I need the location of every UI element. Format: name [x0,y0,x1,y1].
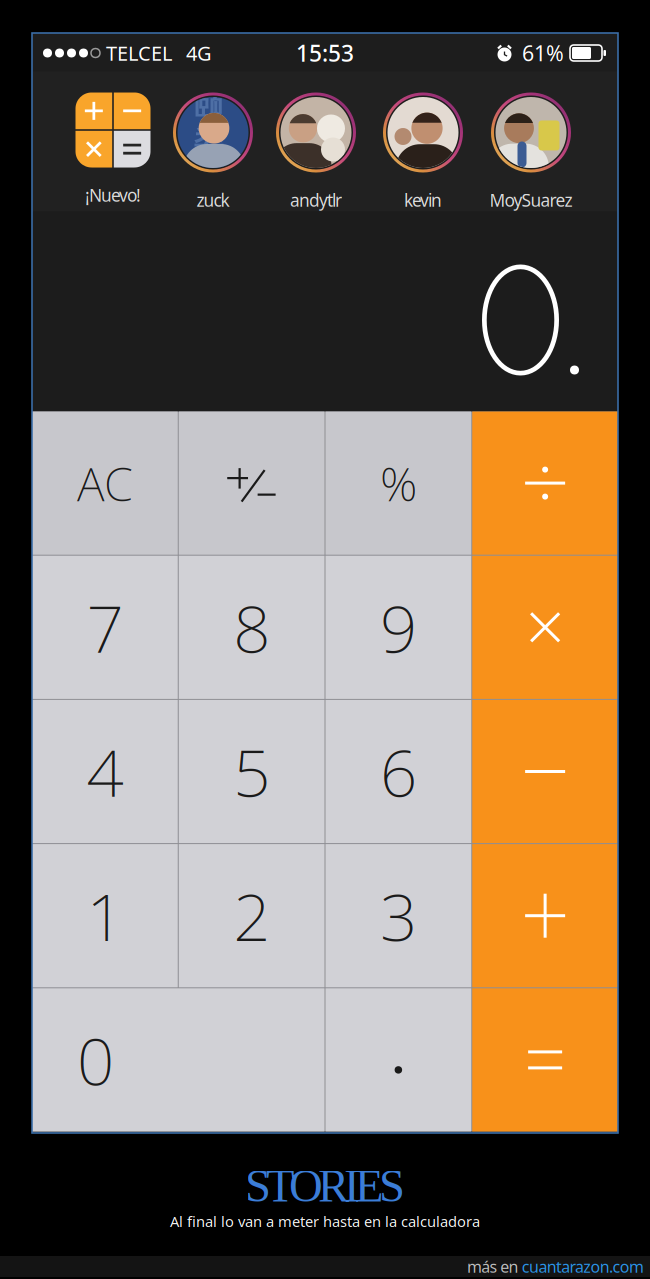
button[interactable]: andytlr [264,71,368,211]
button[interactable]: 5 [179,700,325,843]
button[interactable]: 9 [325,556,471,699]
staticText: AC [77,452,133,514]
button[interactable]: 6 [325,700,471,843]
button[interactable]: plus minus [179,411,325,555]
staticText: 61% [522,39,564,67]
staticText: 3 [380,872,417,959]
button[interactable]: plus [472,844,618,987]
button[interactable]: multiply [472,556,618,699]
staticText: ¡Nuevo! [85,183,141,206]
staticText: 颐 委 [194,88,232,161]
staticText: MoySuarez [489,188,572,211]
staticText: 5 [233,728,270,815]
staticText: andytlr [290,188,342,211]
staticText: más en [467,1256,522,1277]
button[interactable]: decimal point [325,988,471,1131]
button[interactable]: MoySuarez [479,71,583,211]
button[interactable]: 颐 委 [161,71,265,211]
button[interactable]: 4 [32,700,178,843]
staticText: % [380,452,417,514]
button[interactable]: STORIES [245,1160,405,1212]
staticText: 8 [233,584,270,671]
button[interactable]: AC [32,411,178,555]
button[interactable]: 8 [179,556,325,699]
button[interactable]: divide [472,411,618,555]
button[interactable]: % [325,411,471,555]
button[interactable]: 0 [32,988,324,1131]
button[interactable]: minus [472,700,618,843]
staticText: 4G [186,40,212,66]
button[interactable]: 7 [32,556,178,699]
button[interactable]: 2 [179,844,325,987]
staticText: kevin [404,188,442,211]
staticText: 9 [380,584,417,671]
staticText: 4 [86,728,123,815]
staticText: STORIES [245,1160,405,1212]
staticText: cuantarazon.com [522,1256,644,1277]
staticText: 0 [77,1016,114,1103]
button[interactable]: cuantarazon.com [522,1256,644,1277]
staticText: TELCEL [106,40,172,66]
staticText: Al final lo van a meter hasta en la calc… [170,1212,480,1231]
button[interactable]: 3 [325,844,471,987]
staticText: 7 [86,584,123,671]
staticText: 6 [380,728,417,815]
staticText: zuck [196,188,229,211]
staticText: 1 [86,872,123,959]
staticText: 2 [233,872,270,959]
button[interactable]: 1 [32,844,178,987]
button[interactable]: kevin [371,71,475,211]
staticText: 15:53 [296,38,354,68]
button[interactable]: ¡Nuevo! [61,71,165,211]
button[interactable]: equals [472,988,618,1131]
